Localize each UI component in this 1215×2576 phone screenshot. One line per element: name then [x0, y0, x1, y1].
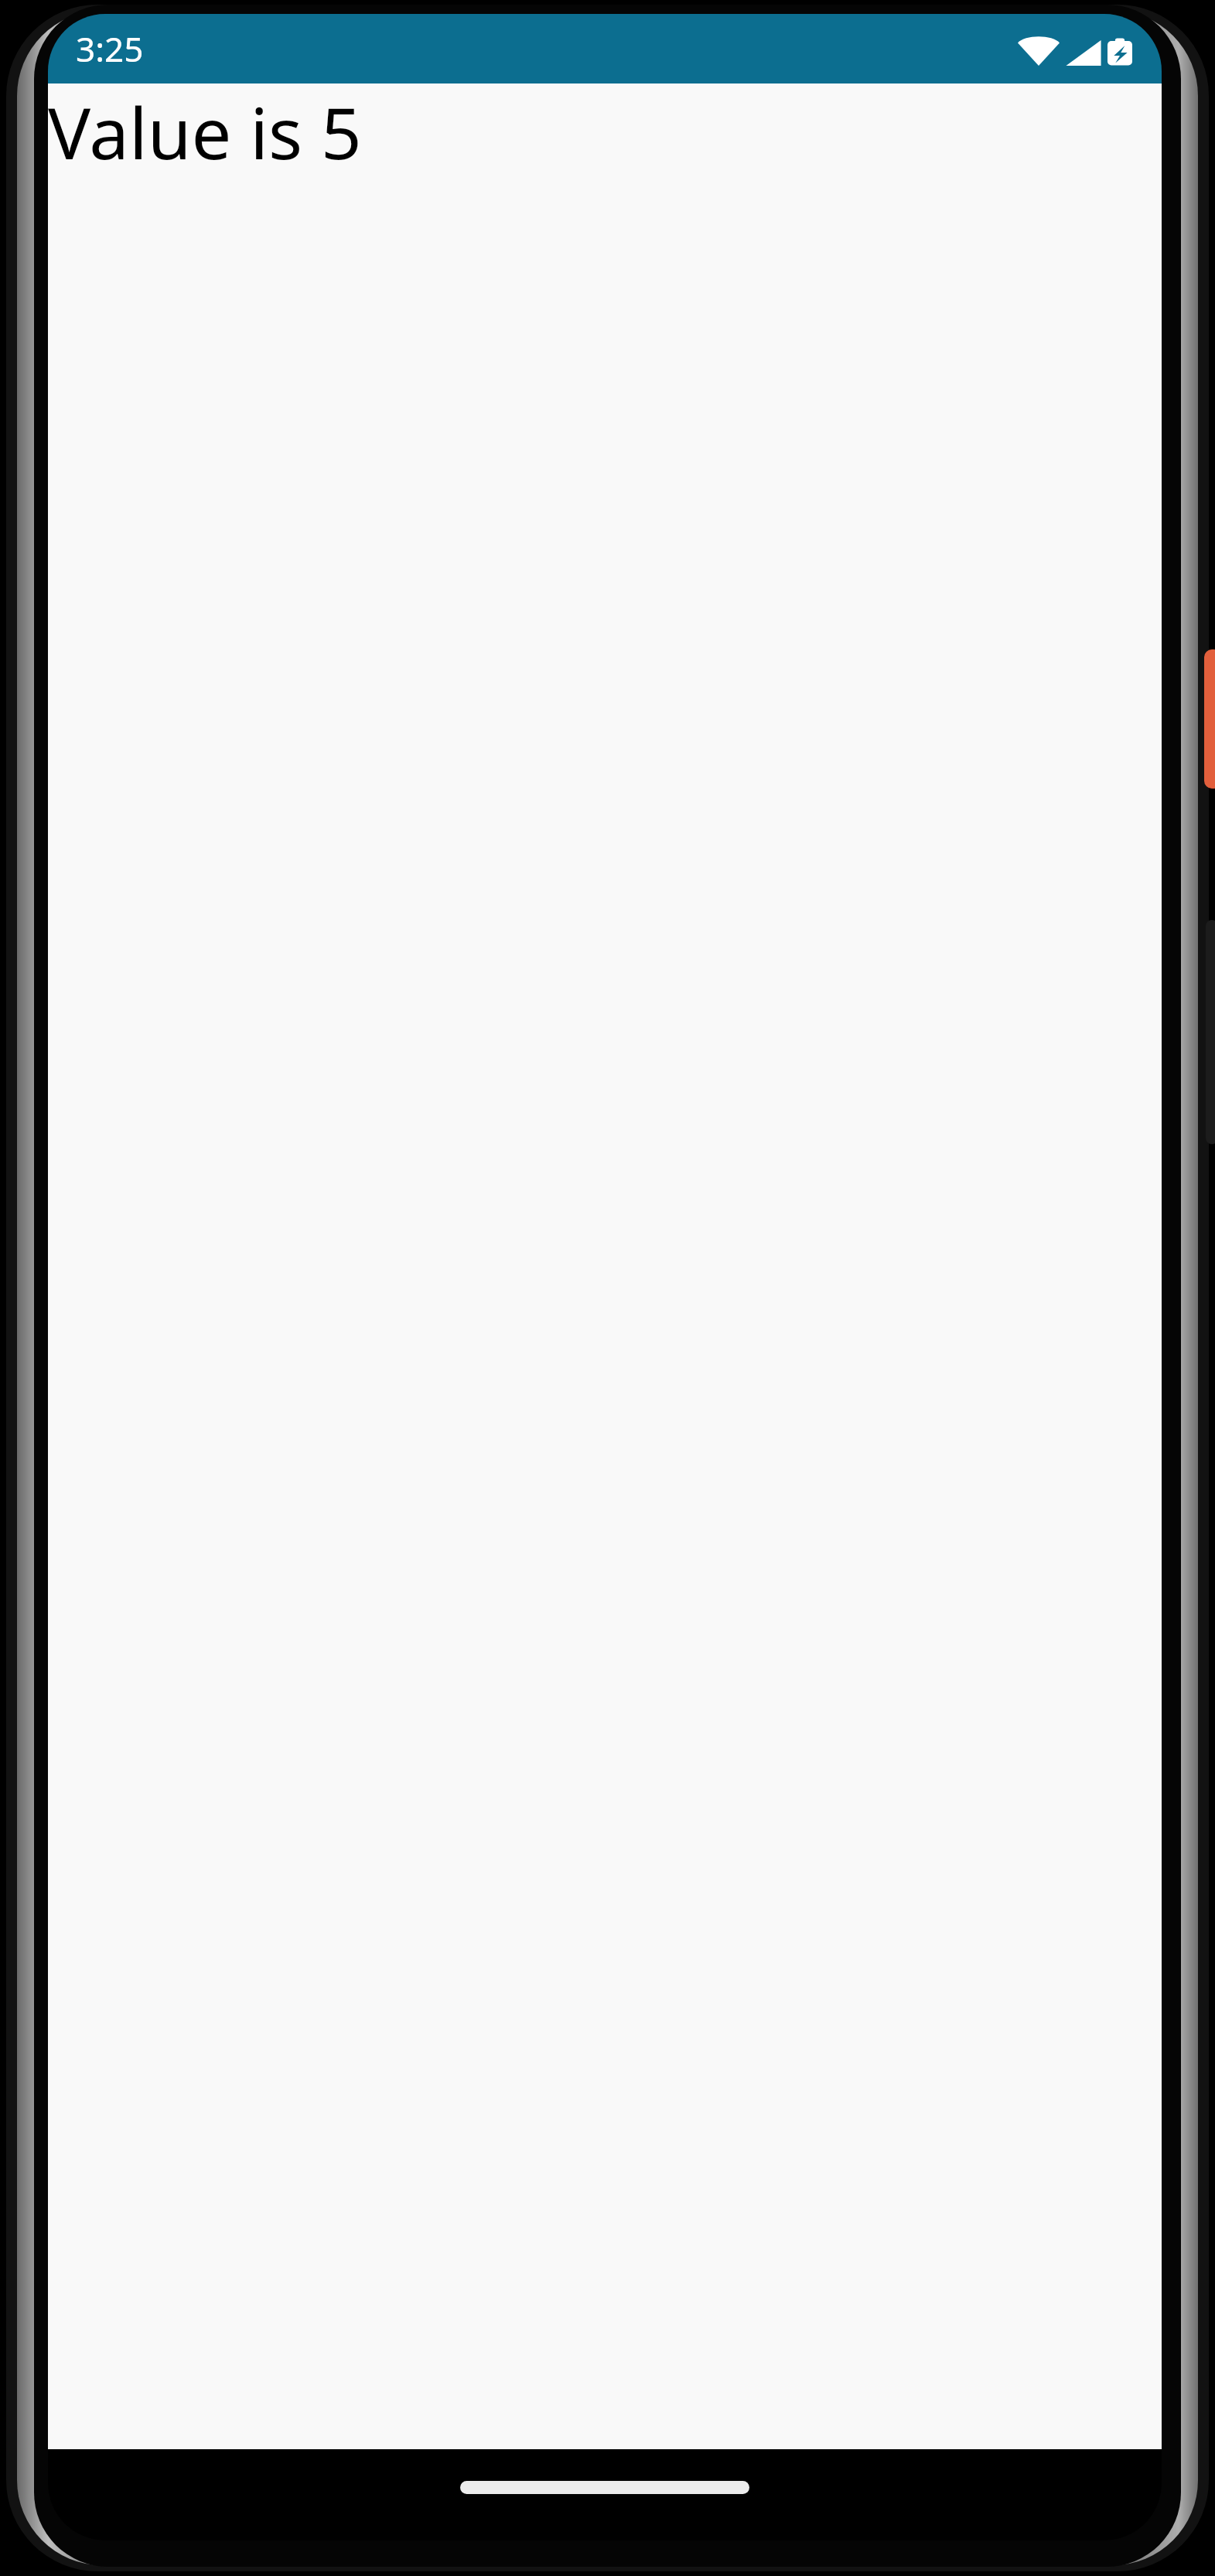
staticText: 3:25 [76, 26, 144, 72]
button[interactable]: Value is 5 [48, 83, 362, 180]
button[interactable]: Home gesture bar [460, 2481, 749, 2494]
